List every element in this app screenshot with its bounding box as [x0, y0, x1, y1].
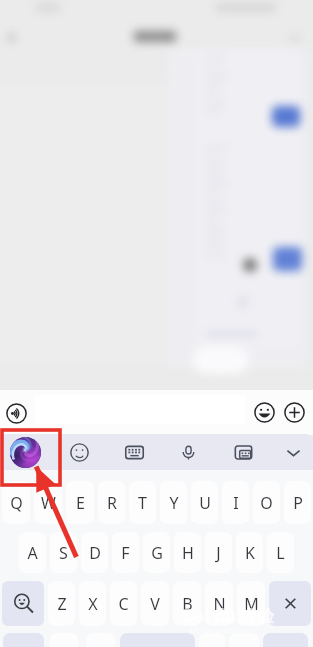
button[interactable]: Add attachment [283, 401, 306, 424]
staticText: Y [169, 492, 179, 514]
button[interactable]: E [66, 481, 94, 524]
button[interactable]: K [236, 532, 263, 573]
staticText: W [41, 492, 56, 514]
staticText: L [276, 542, 285, 564]
button[interactable]: N [205, 581, 233, 626]
staticText: J [216, 542, 221, 564]
staticText: M [244, 593, 259, 615]
button[interactable]: V [141, 581, 169, 626]
staticText: Q [10, 492, 23, 514]
button[interactable]: Emoji [253, 401, 276, 424]
button[interactable]: I [222, 481, 249, 524]
staticText: V [150, 593, 160, 615]
button[interactable]: Sticker [66, 434, 93, 470]
button[interactable]: Keyboard [121, 434, 148, 470]
button[interactable]: O [253, 481, 280, 524]
staticText: Bai du 经验 [183, 604, 275, 627]
button[interactable]: Voice input [4, 401, 28, 425]
staticText: Z [57, 593, 67, 615]
button[interactable]: Assistant [1, 434, 49, 470]
button[interactable]: R [98, 481, 125, 524]
staticText: X [88, 593, 98, 615]
staticText: G [151, 542, 163, 564]
button[interactable]: X [79, 581, 106, 626]
button[interactable]: Y [160, 481, 187, 524]
staticText: T [138, 492, 147, 514]
button[interactable]: H [174, 532, 201, 573]
staticText: H [182, 542, 194, 564]
button[interactable]: Symbols [3, 633, 44, 647]
staticText: R [107, 492, 117, 514]
button[interactable]: P [284, 481, 311, 524]
button[interactable]: S [50, 532, 77, 573]
staticText: B [182, 593, 193, 615]
staticText: D [89, 542, 101, 564]
staticText: O [260, 492, 273, 514]
button[interactable]: T [129, 481, 156, 524]
staticText: U [199, 492, 211, 514]
button[interactable]: Collapse [280, 434, 307, 470]
staticText: P [293, 492, 303, 514]
button[interactable]: Backspace [269, 581, 311, 626]
staticText: N [213, 593, 226, 615]
staticText: A [27, 542, 38, 564]
staticText: C [118, 593, 129, 615]
button[interactable]: B [173, 581, 201, 626]
button[interactable]: G [143, 532, 170, 573]
button[interactable]: W [34, 481, 62, 524]
button[interactable]: A [19, 532, 46, 573]
button[interactable]: C [110, 581, 137, 626]
staticText: S [59, 542, 68, 564]
staticText: I [233, 492, 239, 514]
button[interactable]: Voice typing [175, 434, 202, 470]
button[interactable]: Q [2, 481, 30, 524]
button[interactable]: U [191, 481, 218, 524]
button[interactable]: D [81, 532, 108, 573]
staticText: E [76, 492, 85, 514]
button[interactable]: Emoji search [2, 581, 44, 626]
button[interactable]: Z [48, 581, 75, 626]
button[interactable]: Enter [263, 633, 308, 647]
button[interactable]: F [112, 532, 139, 573]
button[interactable]: L [267, 532, 294, 573]
button[interactable]: M [237, 581, 265, 626]
button[interactable]: Quick reply card [230, 434, 257, 470]
staticText: jingyan.baidu.com [189, 626, 250, 636]
staticText: K [245, 542, 255, 564]
staticText: F [121, 542, 130, 564]
button[interactable]: J [205, 532, 232, 573]
